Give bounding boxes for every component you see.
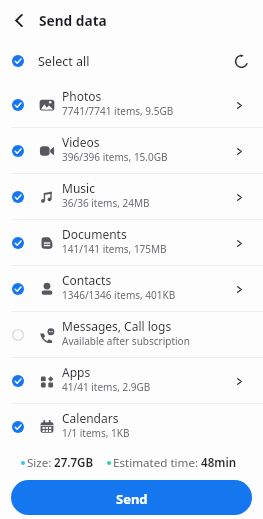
button[interactable]: Music <box>0 174 263 220</box>
staticText: Send <box>116 490 148 508</box>
staticText: Documents <box>62 226 127 242</box>
button[interactable]: Back <box>0 0 37 40</box>
button[interactable]: Contacts <box>0 266 263 312</box>
staticText: Apps <box>62 364 91 380</box>
staticText: Videos <box>62 134 100 150</box>
staticText: 1/1 items, 1KB <box>62 426 130 440</box>
staticText: 41/41 items, 2.9GB <box>62 380 151 394</box>
staticText: 1346/1346 items, 401KB <box>62 288 176 302</box>
button[interactable]: Select all <box>0 40 226 82</box>
staticText: 396/396 items, 15.0GB <box>62 150 168 164</box>
button[interactable]: Photos <box>0 82 263 128</box>
staticText: 36/36 items, 24MB <box>62 196 150 210</box>
staticText: Messages, Call logs <box>62 318 172 334</box>
staticText: Music <box>62 180 95 196</box>
button[interactable]: Videos <box>0 128 263 174</box>
button[interactable]: Apps <box>0 358 263 404</box>
staticText: Photos <box>62 88 102 104</box>
staticText: Calendars <box>62 410 119 426</box>
button[interactable]: Refresh <box>226 46 256 76</box>
staticText: Size: <box>27 455 52 471</box>
staticText: Estimated time: <box>113 455 199 471</box>
button[interactable]: Messages, Call logs <box>0 312 263 358</box>
staticText: 27.7GB <box>54 455 94 471</box>
button[interactable]: Send <box>11 480 252 515</box>
staticText: Select all <box>38 53 90 70</box>
button[interactable]: Documents <box>0 220 263 266</box>
staticText: 7741/7741 items, 9.5GB <box>62 104 174 118</box>
staticText: 48min <box>201 455 237 471</box>
staticText: Available after subscription <box>62 334 190 348</box>
button[interactable]: Calendars <box>0 404 263 450</box>
staticText: Contacts <box>62 272 112 288</box>
staticText: Send data <box>39 11 107 30</box>
staticText: 141/141 items, 175MB <box>62 242 167 256</box>
